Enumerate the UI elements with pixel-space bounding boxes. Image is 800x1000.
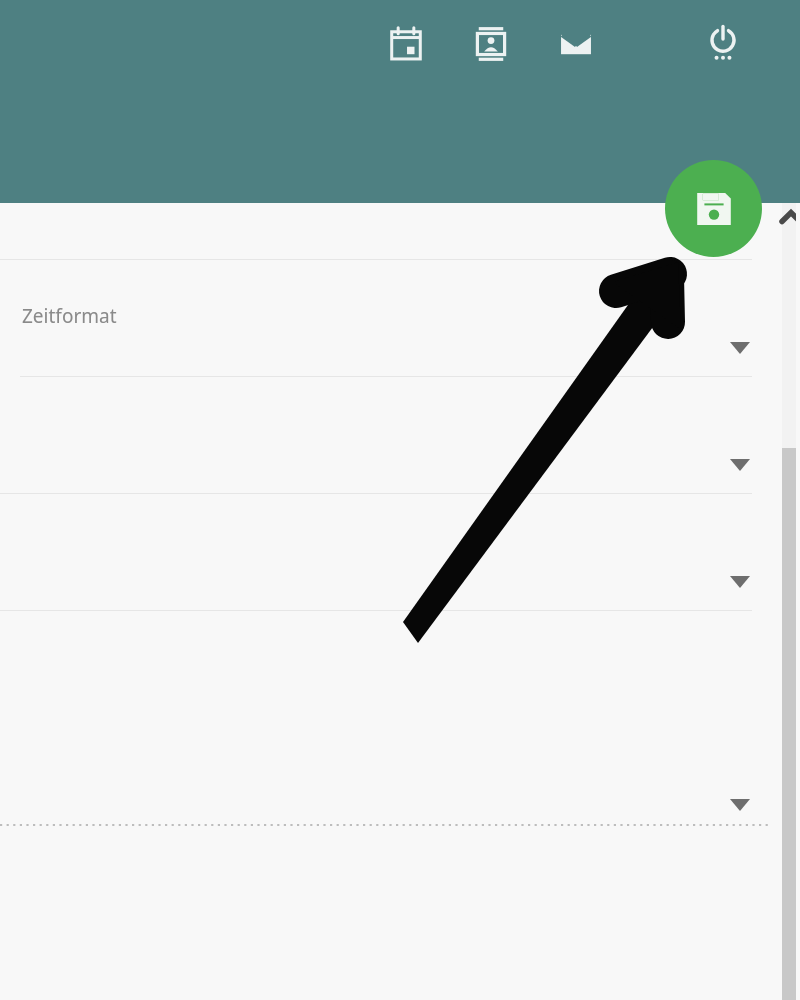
button[interactable] — [0, 611, 800, 823]
button[interactable]: Save — [665, 160, 762, 257]
button[interactable]: Calendar — [380, 18, 432, 70]
button[interactable]: Mail — [550, 18, 602, 70]
staticText: Zeitformat — [22, 303, 117, 329]
button[interactable] — [0, 377, 800, 493]
button[interactable]: Zeitformat — [0, 260, 800, 376]
button[interactable]: Power options — [697, 18, 749, 70]
button[interactable]: Contacts — [465, 18, 517, 70]
button[interactable] — [0, 494, 800, 610]
